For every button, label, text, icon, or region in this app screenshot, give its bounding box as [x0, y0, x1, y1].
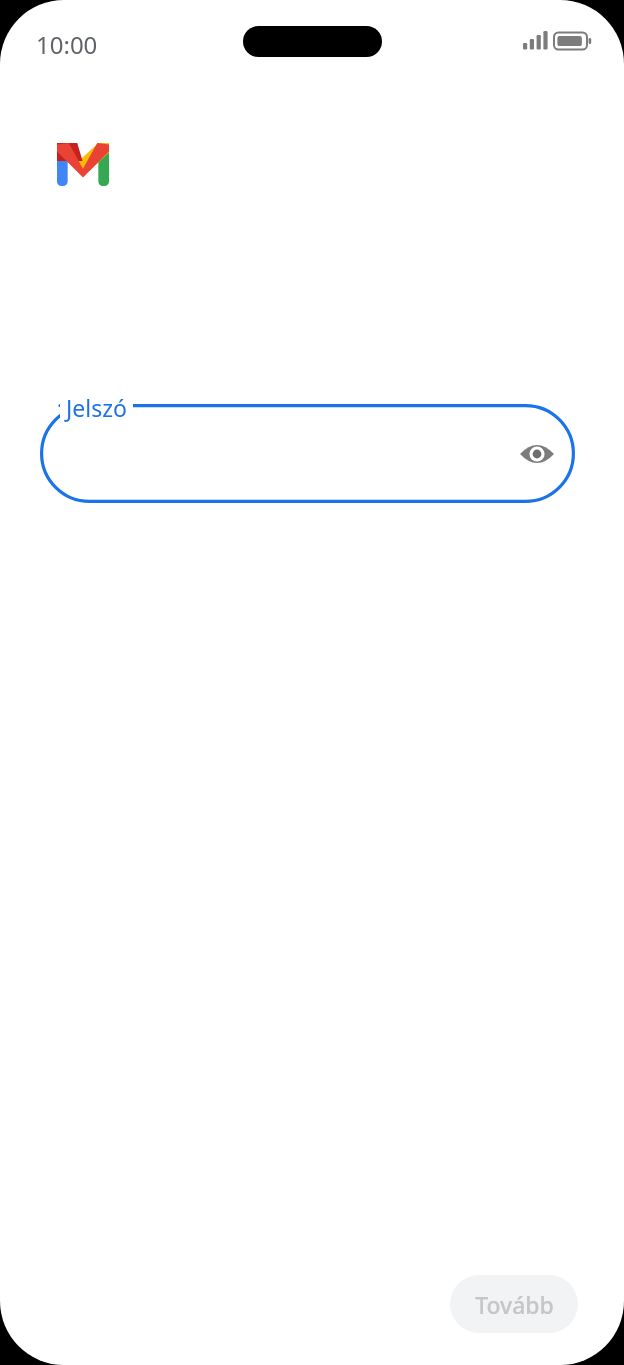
button[interactable]: Tovább: [450, 1275, 578, 1333]
staticText: 10:00: [36, 28, 98, 61]
staticText: Jelszó: [66, 392, 127, 423]
staticText: Tovább: [475, 1289, 554, 1320]
button[interactable]: Jelszó: [40, 404, 575, 503]
button[interactable]: Jelszó megjelenítése: [507, 424, 567, 484]
